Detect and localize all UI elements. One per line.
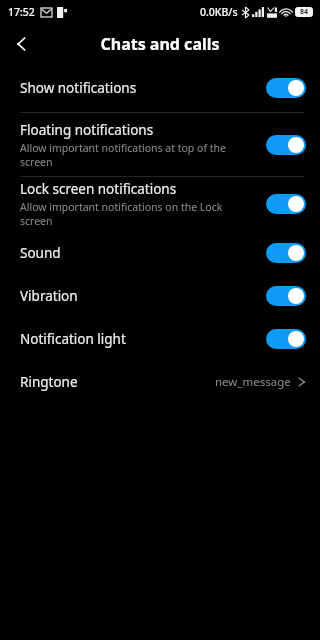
button[interactable]: Sound [0, 231, 320, 274]
button[interactable]: Notification light [0, 317, 320, 360]
staticText: Lock screen notifications [20, 180, 177, 198]
staticText: 17:52 [8, 5, 35, 19]
staticText: Ringtone [20, 373, 215, 391]
staticText: Allow important notifications on the Loc… [20, 200, 226, 228]
staticText: new_message [215, 374, 291, 390]
button[interactable]: Ringtone [0, 360, 320, 403]
staticText: Vibration [20, 287, 78, 305]
staticText: Sound [20, 244, 61, 262]
staticText: Allow important notifications at top of … [20, 141, 226, 169]
staticText: Notification light [20, 330, 126, 348]
staticText: Chats and calls [100, 33, 220, 55]
button[interactable]: Lock screen notifications [0, 177, 320, 231]
staticText: 84 [300, 7, 309, 17]
button[interactable]: Vibration [0, 274, 320, 317]
button[interactable]: Floating notifications [0, 113, 320, 176]
staticText: 0.0KB/s [200, 5, 238, 19]
button[interactable]: Back [0, 24, 44, 64]
button[interactable]: Show notifications [0, 64, 320, 112]
staticText: Show notifications [20, 79, 137, 97]
staticText: Floating notifications [20, 121, 154, 139]
